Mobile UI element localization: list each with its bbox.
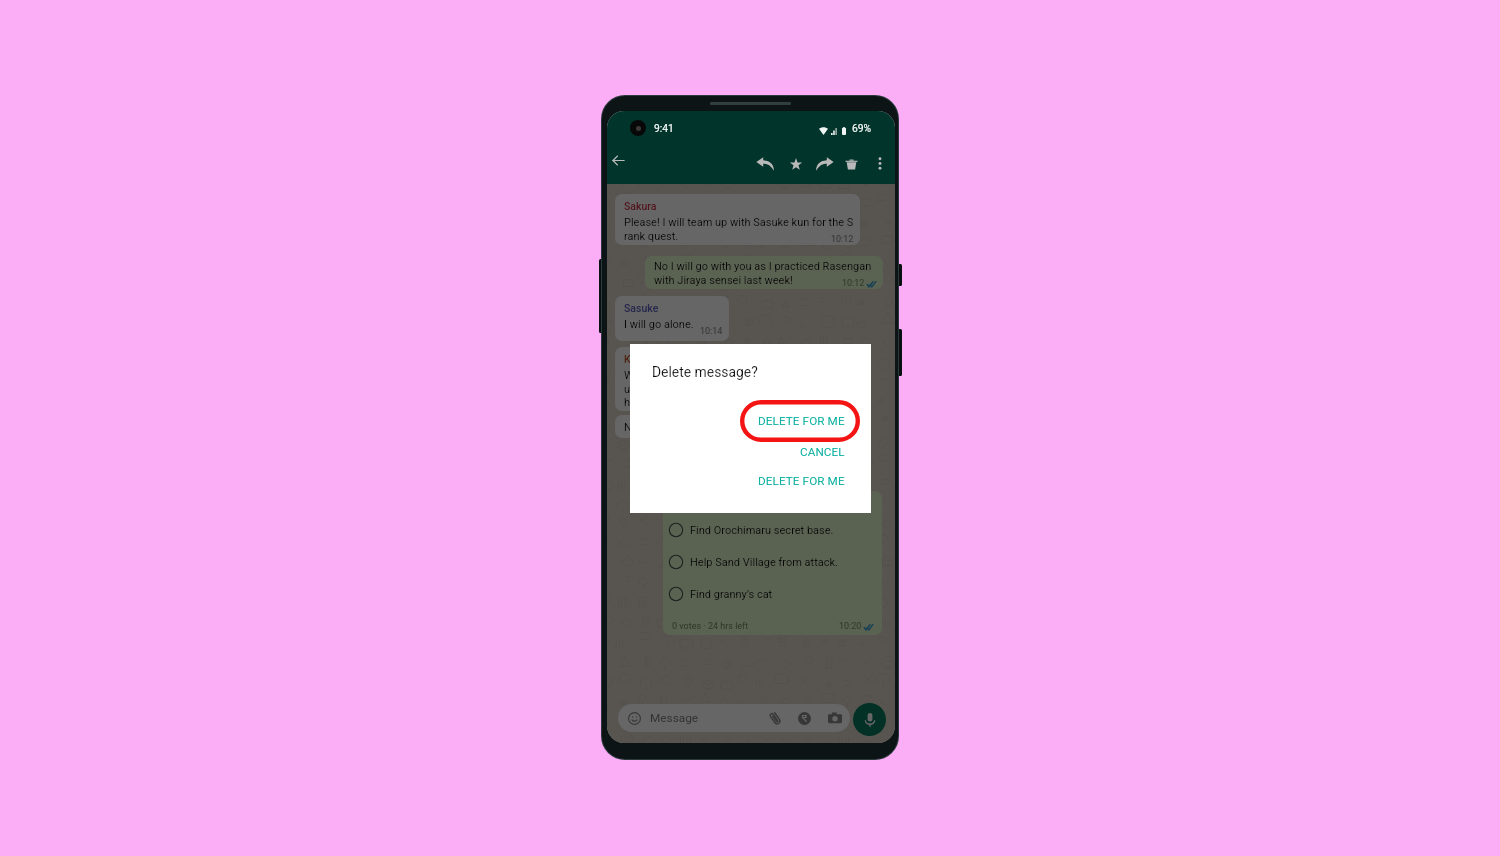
- staticText: DELETE FOR ME: [758, 414, 845, 428]
- staticText: Kakashi: [624, 353, 662, 365]
- staticText: I will go alone.: [624, 318, 694, 331]
- staticText: We have a bigger problem. There is an un…: [624, 369, 845, 408]
- button[interactable]: Reply: [756, 157, 774, 171]
- button[interactable]: Star: [789, 157, 803, 171]
- staticText: Sasuke: [624, 302, 659, 314]
- staticText: Find Orochimaru secret base.: [690, 524, 834, 537]
- staticText: Sakura: [624, 200, 657, 212]
- staticText: 10:19: [722, 427, 745, 438]
- staticText: 10:12: [831, 234, 854, 245]
- staticText: DELETE FOR ME: [758, 474, 845, 488]
- staticText: 69%: [852, 122, 872, 134]
- staticText: 0 votes · 24 hrs left: [672, 621, 749, 632]
- button[interactable]: Attach: [768, 711, 782, 725]
- staticText: No problem sensei!: [624, 421, 719, 434]
- staticText: Please! I will team up with Sasuke kun f…: [624, 216, 854, 242]
- button[interactable]: Help Sand Village from attack.: [668, 554, 874, 570]
- button[interactable]: Payment: [798, 712, 811, 725]
- staticText: Delete message?: [652, 364, 758, 380]
- staticText: 9:41: [654, 122, 674, 134]
- staticText: CANCEL: [800, 445, 845, 459]
- button[interactable]: DELETE FOR ME: [750, 408, 853, 434]
- button[interactable]: More options: [875, 157, 885, 170]
- staticText: No I will go with you as I practiced Ras…: [654, 260, 877, 286]
- staticText: 10:19: [822, 400, 845, 411]
- staticText: Help Sand Village from attack.: [690, 556, 839, 569]
- button[interactable]: Camera: [828, 712, 842, 724]
- staticText: 10:14: [700, 326, 723, 337]
- button[interactable]: DELETE FOR ME: [750, 468, 853, 494]
- button[interactable]: Find Orochimaru secret base.: [668, 522, 874, 538]
- button[interactable]: Delete: [844, 158, 859, 171]
- button[interactable]: Forward: [816, 157, 834, 171]
- staticText: Message: [650, 711, 699, 725]
- button[interactable]: Voice message: [853, 703, 886, 736]
- staticText: 10:20: [839, 621, 862, 632]
- button[interactable]: Emoji: [618, 704, 850, 732]
- staticText: Find granny’s cat: [690, 588, 773, 601]
- button[interactable]: Back: [611, 154, 626, 167]
- button[interactable]: Emoji: [628, 712, 641, 725]
- button[interactable]: CANCEL: [792, 439, 853, 465]
- button[interactable]: Find granny’s cat: [668, 586, 874, 602]
- staticText: 10:12: [842, 278, 865, 289]
